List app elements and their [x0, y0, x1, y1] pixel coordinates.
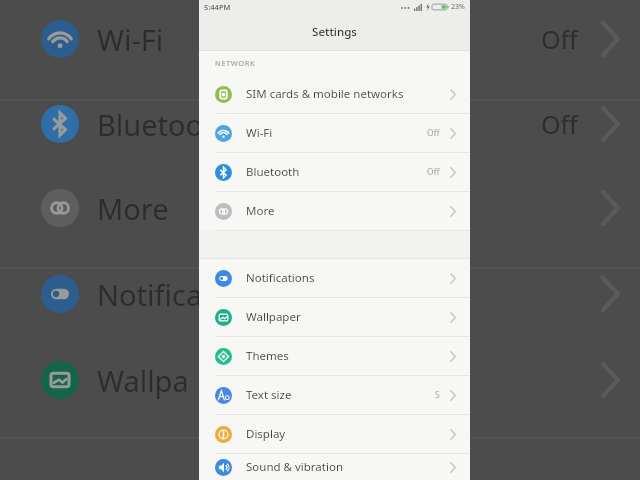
- staticText: 23%: [451, 2, 465, 12]
- staticText: Bluetoo: [97, 105, 204, 144]
- staticText: NETWORK: [215, 58, 256, 68]
- button[interactable]: More: [199, 192, 470, 230]
- button[interactable]: Display: [199, 415, 470, 453]
- button[interactable]: Sound & vibration: [199, 454, 470, 480]
- staticText: Wallpa: [97, 361, 189, 400]
- staticText: 5:44PM: [204, 2, 231, 12]
- staticText: More: [97, 189, 169, 228]
- button[interactable]: Wi-Fi: [199, 114, 470, 152]
- staticText: Off: [427, 127, 440, 139]
- staticText: Notifications: [246, 270, 315, 286]
- button[interactable]: SIM cards & mobile networks: [199, 75, 470, 113]
- staticText: Text size: [246, 387, 292, 403]
- staticText: Themes: [246, 348, 289, 364]
- staticText: Bluetooth: [246, 164, 300, 180]
- button[interactable]: Text size: [199, 376, 470, 414]
- staticText: Sound & vibration: [246, 459, 343, 475]
- button[interactable]: Bluetooth: [199, 153, 470, 191]
- staticText: SIM cards & mobile networks: [246, 86, 404, 102]
- staticText: Off: [427, 166, 440, 178]
- staticText: Wi-Fi: [97, 20, 164, 59]
- staticText: Notifica: [97, 275, 203, 314]
- staticText: Off: [541, 22, 578, 56]
- staticText: Display: [246, 426, 286, 442]
- staticText: Wallpaper: [246, 309, 301, 325]
- button[interactable]: Notifications: [199, 259, 470, 297]
- staticText: More: [246, 203, 275, 219]
- staticText: Wi-Fi: [246, 125, 273, 141]
- button[interactable]: Wallpaper: [199, 298, 470, 336]
- staticText: S: [435, 389, 440, 401]
- staticText: Off: [541, 107, 578, 141]
- staticText: Settings: [312, 24, 357, 40]
- button[interactable]: Themes: [199, 337, 470, 375]
